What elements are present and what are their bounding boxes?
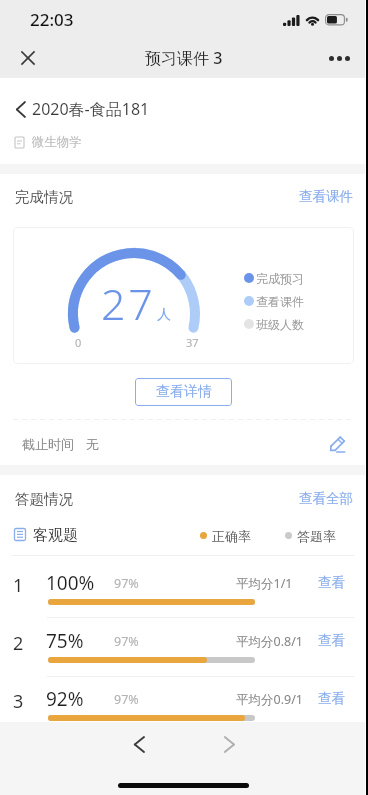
button[interactable]: Back — [117, 722, 161, 766]
staticText: 0 — [75, 335, 82, 350]
staticText: 平均分0.8/1 — [236, 633, 303, 650]
staticText: 平均分0.9/1 — [236, 691, 303, 708]
button[interactable]: 1 — [0, 560, 368, 617]
staticText: 班级人数 — [256, 317, 304, 332]
staticText: 97% — [114, 575, 139, 592]
button[interactable]: 2020春-食品181 — [0, 92, 368, 126]
button[interactable]: 2 — [0, 618, 368, 675]
staticText: 答题情况 — [15, 490, 73, 508]
staticText: 正确率 — [212, 528, 251, 544]
staticText: 查看详情 — [156, 383, 212, 401]
staticText: 2 — [13, 631, 24, 656]
button[interactable]: More options — [317, 38, 361, 78]
staticText: 微生物学 — [32, 134, 82, 150]
button[interactable]: 查看 — [313, 685, 350, 712]
staticText: 查看课件 — [299, 188, 353, 205]
staticText: 3 — [13, 689, 24, 714]
staticText: 完成预习 — [256, 271, 304, 286]
staticText: 截止时间 — [22, 436, 74, 452]
button[interactable]: Edit deadline — [322, 428, 352, 458]
staticText: 100% — [46, 570, 95, 596]
staticText: 查看全部 — [299, 490, 353, 507]
staticText: 无 — [86, 436, 99, 452]
staticText: 预习课件 3 — [145, 47, 223, 69]
staticText: 22:03 — [30, 8, 74, 31]
button[interactable]: Close — [6, 38, 50, 78]
staticText: 查看 — [318, 632, 345, 649]
staticText: 完成情况 — [15, 188, 73, 206]
staticText: 92% — [46, 686, 84, 712]
staticText: 27 — [101, 274, 156, 333]
staticText: 查看 — [318, 690, 345, 707]
button[interactable]: 查看 — [313, 569, 350, 596]
staticText: 人 — [157, 306, 171, 324]
button[interactable]: Forward — [207, 722, 251, 766]
button[interactable]: 查看课件 — [284, 182, 368, 211]
staticText: 75% — [46, 628, 84, 654]
staticText: 平均分1/1 — [236, 575, 293, 592]
staticText: 37 — [186, 335, 199, 350]
staticText: 1 — [13, 573, 24, 598]
staticText: 客观题 — [33, 526, 78, 545]
button[interactable]: 查看全部 — [284, 484, 368, 513]
button[interactable]: 查看详情 — [135, 378, 232, 406]
staticText: 查看 — [318, 574, 345, 591]
staticText: 97% — [114, 691, 139, 708]
staticText: 查看课件 — [256, 294, 304, 309]
button[interactable]: 3 — [0, 676, 368, 733]
staticText: 答题率 — [297, 528, 336, 544]
staticText: 2020春-食品181 — [32, 98, 150, 120]
staticText: 97% — [114, 633, 139, 650]
button[interactable]: 查看 — [313, 627, 350, 654]
